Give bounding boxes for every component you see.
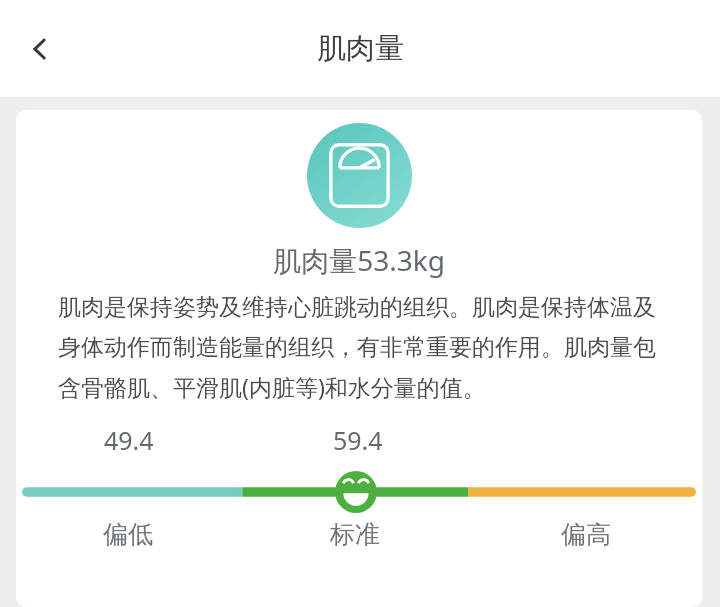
staticText: 59.4 [333, 423, 383, 457]
staticText: 肌肉量53.3kg [273, 241, 445, 279]
staticText: 标准 [330, 519, 380, 550]
staticText: 49.4 [104, 423, 154, 457]
button[interactable]: 偏高 [470, 519, 702, 550]
button[interactable]: Back [8, 17, 72, 81]
staticText: 肌肉是保持姿势及维持心脏跳动的组织。肌肉是保持体温及身体动作而制造能量的组织，有… [58, 293, 660, 403]
staticText: 偏高 [561, 519, 611, 550]
button[interactable]: 标准 [240, 519, 470, 550]
button[interactable]: 偏低 [16, 519, 240, 550]
staticText: 偏低 [103, 519, 153, 550]
staticText: 肌肉量 [317, 30, 404, 67]
